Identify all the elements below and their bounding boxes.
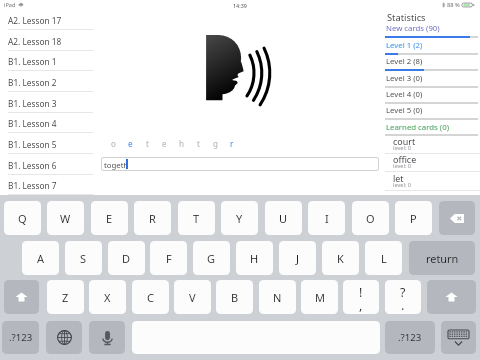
staticText: Level 2 (8) [386,56,423,67]
staticText: office [393,153,417,165]
button[interactable]: B1. Lesson 6 [0,154,96,175]
button[interactable]: Backspace [439,201,475,235]
staticText: B [231,290,239,305]
staticText: M [315,290,325,305]
button[interactable]: togeth [101,157,379,171]
button[interactable]: ! [343,280,379,314]
staticText: g [213,138,218,149]
staticText: Level 4 (0) [386,89,423,100]
staticText: , [359,297,363,314]
staticText: B1. Lesson 2 [8,77,57,88]
button[interactable]: O [352,201,389,235]
button[interactable]: F [150,241,187,275]
button[interactable]: t [191,137,205,149]
button[interactable]: U [265,201,302,235]
button[interactable]: Z [47,280,84,314]
button[interactable]: K [322,241,359,275]
button[interactable]: A2. Lesson 17 [0,9,96,30]
button[interactable]: D [108,241,145,275]
button[interactable]: Level 3 (0) [383,70,480,86]
staticText: r [230,138,234,149]
button[interactable]: V [174,280,211,314]
button[interactable]: Y [221,201,258,235]
staticText: B1. Lesson 3 [8,98,57,109]
staticText: F [166,251,172,266]
button[interactable]: L [365,241,402,275]
button[interactable]: A2. Lesson 18 [0,30,96,51]
staticText: H [250,251,259,266]
staticText: N [273,290,282,305]
button[interactable]: B1. Lesson 5 [0,133,96,154]
button[interactable]: Next keyboard [46,321,82,354]
button[interactable]: office [383,153,480,172]
button[interactable]: e [157,137,171,149]
button[interactable]: t [140,137,154,149]
staticText: o [111,138,116,149]
button[interactable]: N [259,280,296,314]
staticText: T [193,211,200,226]
staticText: I [325,211,329,226]
staticText: 14:39 [233,2,247,9]
button[interactable]: T [178,201,215,235]
button[interactable]: C [132,280,169,314]
button[interactable]: X [89,280,126,314]
staticText: Y [236,211,243,226]
staticText: ! [359,284,363,301]
staticText: X [104,290,111,305]
staticText: S [80,251,87,266]
button[interactable]: court [383,135,480,154]
button[interactable]: B1. Lesson 7 [0,174,96,195]
button[interactable]: return [409,241,475,275]
button[interactable]: G [193,241,230,275]
staticText: Learned cards (0) [386,122,449,133]
staticText: .?123 [9,331,33,344]
button[interactable]: o [106,137,120,149]
button[interactable]: Level 5 (0) [383,102,480,118]
button[interactable]: h [174,137,188,149]
button[interactable]: B1. Lesson 1 [0,50,96,71]
button[interactable]: E [91,201,128,235]
button[interactable]: let [383,172,480,191]
button[interactable]: r [225,137,239,149]
button[interactable]: W [47,201,84,235]
button[interactable]: R [134,201,171,235]
button[interactable]: S [65,241,102,275]
button[interactable]: Statistics [383,10,480,21]
button[interactable]: ? [385,280,421,314]
staticText: B1. Lesson 1 [8,56,57,67]
button[interactable]: e [123,137,137,149]
button[interactable]: M [301,280,338,314]
button[interactable]: Shift [4,280,39,314]
button[interactable]: Learned cards (0) [383,119,480,135]
staticText: O [366,211,375,226]
button[interactable]: B1. Lesson 4 [0,112,96,133]
button[interactable]: B [216,280,253,314]
button[interactable]: g [208,137,222,149]
staticText: t [146,138,149,149]
button[interactable]: Q [4,201,41,235]
button[interactable]: J [279,241,316,275]
button[interactable]: I [308,201,345,235]
button[interactable]: .?123 [385,321,435,354]
button[interactable]: A [22,241,59,275]
staticText: ? [400,284,406,301]
button[interactable]: .?123 [2,321,39,354]
staticText: level: 0 [393,181,411,189]
staticText: L [381,251,387,266]
staticText: B1. Lesson 6 [8,160,57,171]
button[interactable]: B1. Lesson 3 [0,92,96,113]
button[interactable]: Level 1 (2) [383,37,480,53]
button[interactable]: Hide keyboard [441,321,476,354]
staticText: A2. Lesson 18 [8,36,62,47]
staticText: A2. Lesson 17 [8,15,62,26]
button[interactable]: B1. Lesson 2 [0,71,96,92]
staticText: . [401,297,405,314]
button[interactable]: P [395,201,432,235]
button[interactable]: H [236,241,273,275]
button[interactable]: Level 2 (8) [383,53,480,69]
button[interactable]: Dictation [89,321,125,354]
button[interactable]: Level 4 (0) [383,86,480,102]
button[interactable]: New cards (90) [383,20,480,36]
button[interactable]: Shift [427,280,476,314]
